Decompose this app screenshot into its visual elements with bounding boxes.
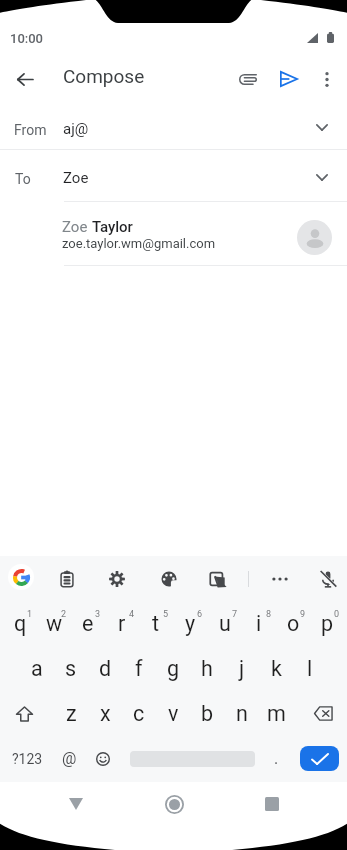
button[interactable]: Shift (2, 691, 46, 736)
button[interactable]: @ (53, 736, 85, 781)
button[interactable]: Enter (300, 746, 339, 771)
staticText: p (321, 611, 334, 636)
staticText: 1 (27, 609, 33, 620)
staticText: o (287, 611, 300, 636)
button[interactable]: From (0, 103, 347, 150)
staticText: z (66, 701, 77, 726)
staticText: s (65, 656, 77, 681)
button[interactable]: Emoji (87, 736, 119, 781)
staticText: e (82, 611, 94, 636)
button[interactable]: Clipboard (53, 565, 81, 593)
button[interactable]: Home (150, 780, 198, 828)
button[interactable]: c (122, 691, 156, 736)
button[interactable]: Voice input off (314, 565, 342, 593)
button[interactable]: f (122, 646, 156, 691)
button[interactable]: Recent apps (248, 780, 296, 828)
button[interactable]: Google search (8, 564, 34, 590)
button[interactable]: o (276, 601, 310, 646)
button[interactable]: Settings (103, 565, 131, 593)
staticText: 5 (163, 609, 169, 620)
button[interactable]: z (54, 691, 88, 736)
button[interactable]: g (156, 646, 190, 691)
button[interactable]: m (259, 691, 293, 736)
button[interactable]: y (173, 601, 207, 646)
staticText: c (133, 701, 145, 726)
button[interactable]: n (225, 691, 259, 736)
staticText: 0 (334, 609, 340, 620)
button[interactable]: a (20, 646, 54, 691)
staticText: 7 (232, 609, 238, 620)
staticText: zoe.taylor.wm@gmail.com (62, 236, 216, 251)
staticText: q (14, 611, 27, 636)
staticText: f (135, 656, 143, 681)
button[interactable]: s (54, 646, 88, 691)
button[interactable]: q (3, 601, 37, 646)
button[interactable]: e (71, 601, 105, 646)
button[interactable]: t (139, 601, 173, 646)
button[interactable]: d (88, 646, 122, 691)
button[interactable]: Navigate up (5, 60, 44, 99)
staticText: w (46, 611, 63, 636)
staticText: l (307, 656, 313, 681)
staticText: u (219, 611, 231, 636)
staticText: 4 (129, 609, 135, 620)
button[interactable]: Back (52, 780, 100, 828)
button[interactable]: More (266, 565, 294, 593)
staticText: t (152, 611, 160, 636)
staticText: h (201, 656, 213, 681)
staticText: j (239, 656, 245, 681)
staticText: b (201, 701, 214, 726)
button[interactable]: To (0, 150, 347, 202)
button[interactable]: x (88, 691, 122, 736)
staticText: k (271, 656, 282, 681)
staticText: a (31, 656, 43, 681)
button[interactable]: Attach file (229, 60, 267, 98)
staticText: 9 (300, 609, 306, 620)
staticText: g (167, 656, 180, 681)
button[interactable]: h (190, 646, 224, 691)
staticText: Zoe (63, 169, 89, 187)
staticText: Zoe (62, 218, 92, 236)
staticText: n (236, 701, 248, 726)
staticText: x (100, 701, 111, 726)
staticText: @ (62, 749, 77, 768)
staticText: d (99, 656, 112, 681)
staticText: . (274, 749, 279, 768)
button[interactable]: p (310, 601, 344, 646)
button[interactable]: More options (308, 60, 346, 98)
button[interactable]: Themes (155, 565, 183, 593)
staticText: aj@ (63, 120, 89, 138)
button[interactable]: Zoe (0, 202, 347, 266)
button[interactable]: Space (125, 736, 260, 781)
staticText: From (14, 122, 47, 138)
staticText: Compose (63, 65, 145, 87)
staticText: 3 (95, 609, 101, 620)
button[interactable]: Send (270, 60, 308, 98)
button[interactable]: . (260, 736, 292, 781)
button[interactable]: Backspace (301, 691, 345, 736)
button[interactable]: k (259, 646, 293, 691)
button[interactable]: ?123 (2, 736, 52, 781)
staticText: r (118, 611, 126, 636)
staticText: y (185, 611, 196, 636)
staticText: m (267, 701, 286, 726)
button[interactable]: i (242, 601, 276, 646)
button[interactable]: b (190, 691, 224, 736)
button[interactable]: r (105, 601, 139, 646)
staticText: 10:00 (10, 31, 44, 46)
staticText: ?123 (12, 751, 43, 767)
button[interactable]: j (225, 646, 259, 691)
button[interactable]: v (156, 691, 190, 736)
staticText: v (168, 701, 179, 726)
button[interactable]: Stickers (203, 565, 231, 593)
button[interactable]: u (208, 601, 242, 646)
button[interactable]: l (293, 646, 327, 691)
staticText: 2 (61, 609, 67, 620)
staticText: 8 (266, 609, 272, 620)
staticText: i (256, 611, 262, 636)
staticText: Taylor (92, 218, 133, 236)
staticText: 6 (197, 609, 203, 620)
button[interactable]: w (37, 601, 71, 646)
staticText: To (15, 171, 31, 187)
